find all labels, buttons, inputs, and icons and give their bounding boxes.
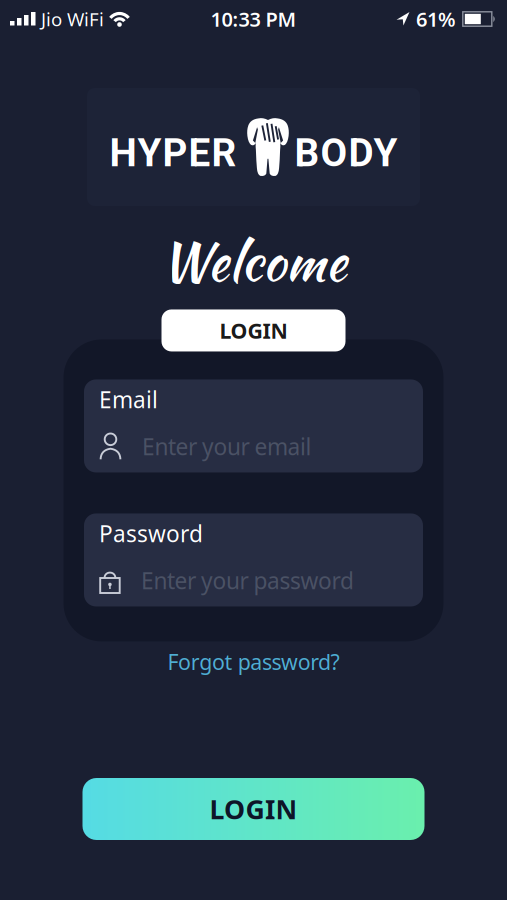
- staticText: BODY: [294, 130, 397, 176]
- staticText: Enter your email: [142, 431, 311, 462]
- staticText: Welcome: [160, 224, 346, 299]
- staticText: Jio WiFi: [41, 7, 104, 31]
- staticText: Password: [99, 518, 203, 548]
- button[interactable]: Email: [84, 379, 423, 472]
- button[interactable]: LOGIN: [161, 309, 345, 351]
- button[interactable]: LOGIN: [82, 778, 424, 840]
- staticText: Email: [99, 384, 158, 414]
- button[interactable]: Forgot password?: [167, 647, 339, 676]
- staticText: Enter your password: [141, 565, 354, 596]
- staticText: Forgot password?: [167, 647, 339, 676]
- button[interactable]: Password: [84, 513, 423, 606]
- staticText: LOGIN: [219, 316, 287, 345]
- staticText: HYPER: [109, 130, 236, 176]
- staticText: 61%: [416, 6, 456, 32]
- staticText: 10:33 PM: [210, 6, 296, 32]
- staticText: LOGIN: [209, 791, 297, 827]
